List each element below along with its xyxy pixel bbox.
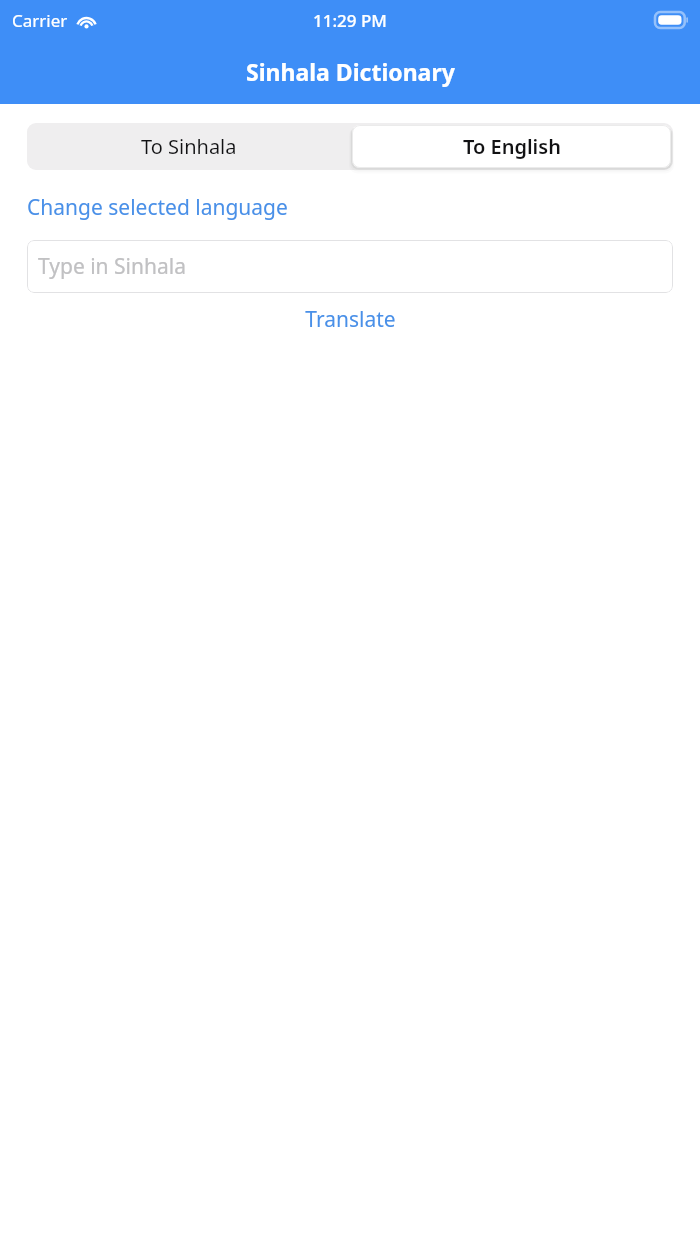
button[interactable]: To Sinhala [27,123,350,170]
other: Battery full [655,12,688,28]
staticText: To Sinhala [141,133,237,160]
other: Wi-Fi [76,13,97,29]
staticText: 11:29 PM [313,9,387,32]
button[interactable]: Type in Sinhala [27,240,673,293]
staticText: Carrier [12,9,68,32]
button[interactable]: Translate [27,305,673,334]
staticText: Change selected language [27,193,288,222]
staticText: Sinhala Dictionary [246,56,455,87]
staticText: To English [463,133,561,160]
button[interactable]: To English [350,123,673,170]
staticText: Translate [305,305,396,334]
staticText: Type in Sinhala [38,252,186,281]
button[interactable]: Change selected language [27,193,288,222]
